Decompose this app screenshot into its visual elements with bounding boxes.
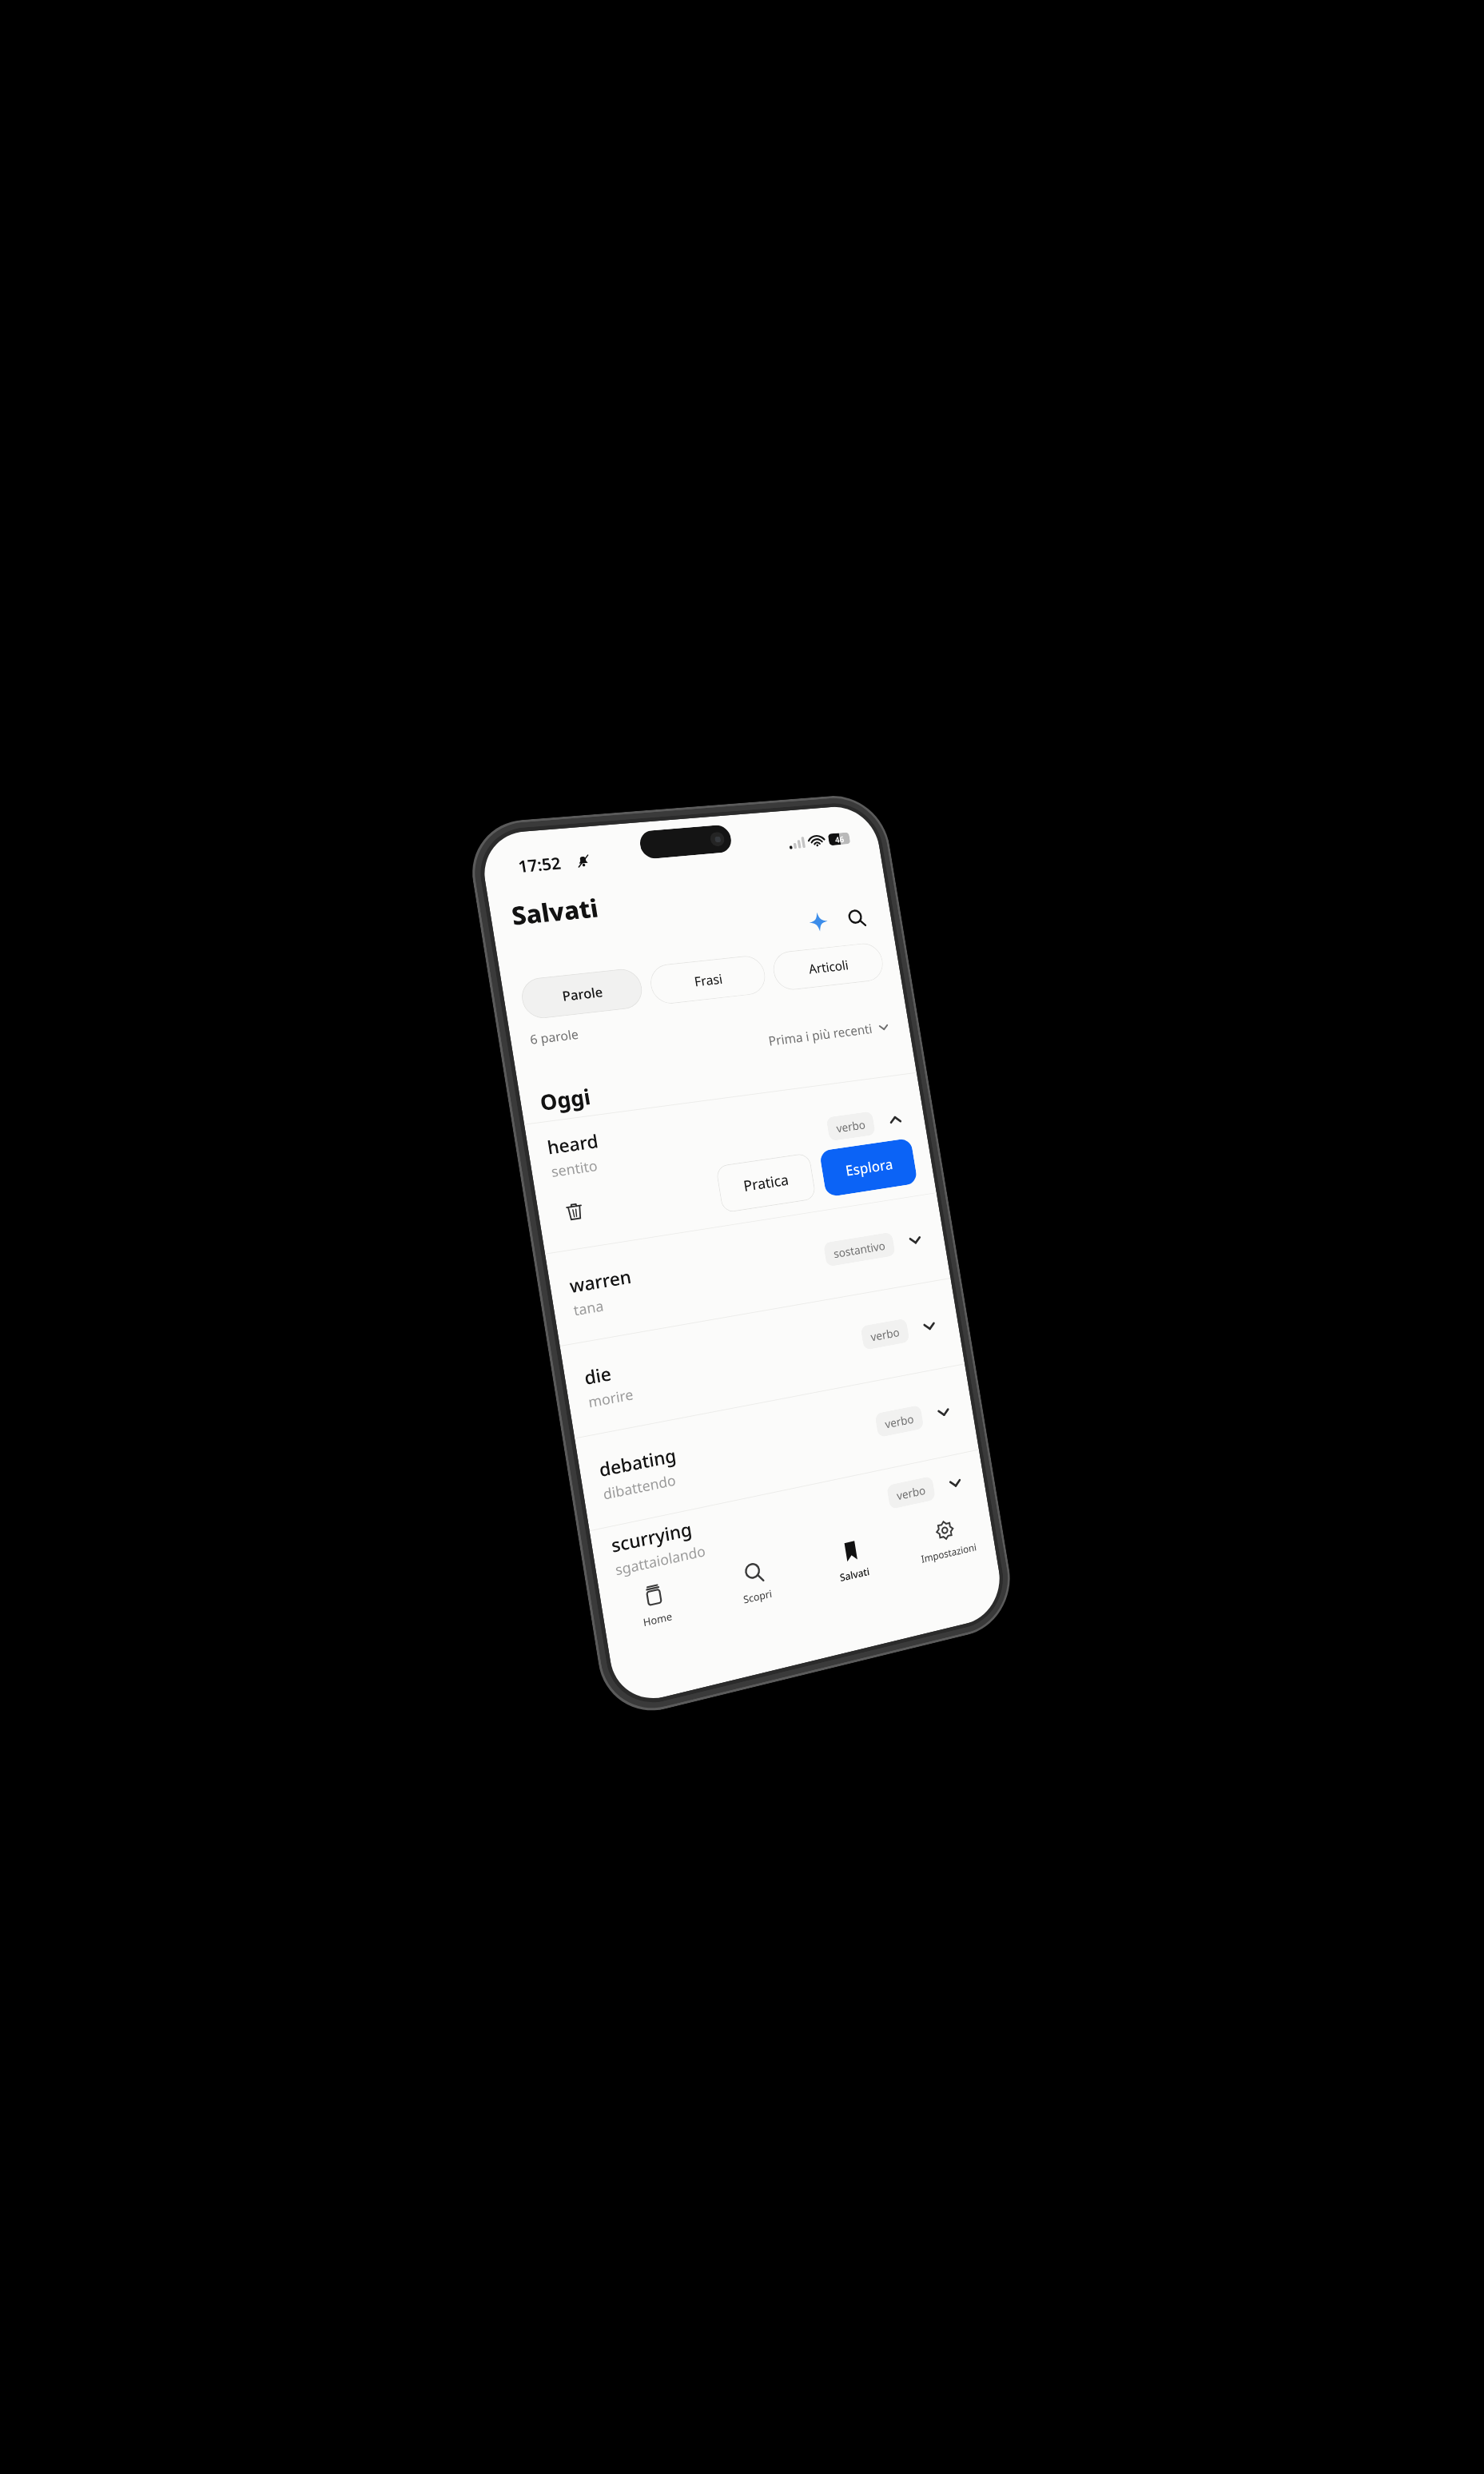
button[interactable]: Impostazioni [896,1509,1002,1614]
staticText: Impostazioni [920,1540,978,1566]
button[interactable]: AI suggerimenti [799,903,837,940]
staticText: heard [545,1128,600,1159]
staticText: morire [587,1384,635,1412]
staticText: Pratica [742,1170,791,1196]
staticText: scurrying [609,1516,694,1557]
button[interactable]: Espandi [930,1397,957,1427]
staticText: Salvati [509,891,601,933]
button[interactable]: Parole [519,967,645,1020]
button[interactable]: warren [545,1193,950,1346]
staticText: die [582,1360,613,1390]
staticText: Home [642,1609,673,1630]
button[interactable]: Pratica [715,1153,817,1213]
staticText: tana [572,1296,605,1320]
staticText: verbo [869,1324,901,1344]
staticText: sostantivo [832,1238,886,1261]
staticText: debating [597,1442,678,1482]
button[interactable]: Espandi [942,1468,969,1498]
button[interactable]: Home [600,1573,716,1684]
button[interactable]: Comprimi [882,1106,909,1134]
staticText: verbo [884,1411,915,1431]
button[interactable]: Esplora [819,1138,918,1197]
button[interactable]: Espandi [901,1226,929,1255]
button[interactable]: Espandi [916,1311,943,1341]
staticText: Articoli [807,956,850,977]
button[interactable]: Articoli [770,942,886,992]
staticText: Esplora [844,1154,894,1180]
staticText: Salvati [839,1564,871,1584]
staticText: 17:52 [517,852,563,878]
button[interactable]: scurrying [590,1450,988,1589]
button[interactable]: Prima i più recenti [764,1016,894,1051]
staticText: sgattaiolando [614,1541,707,1580]
button[interactable]: debating [575,1364,979,1530]
staticText: verbo [835,1117,867,1136]
button[interactable]: die [560,1279,965,1438]
staticText: Oggi [538,1082,593,1117]
button[interactable]: Elimina [555,1193,594,1230]
staticText: Parole [561,983,604,1005]
button[interactable]: heard [524,1073,936,1254]
staticText: Prima i più recenti [767,1020,874,1050]
staticText: dibattendo [602,1470,678,1504]
staticText: sentito [550,1156,599,1182]
button[interactable]: Cerca [838,900,875,937]
staticText: 46 [834,833,845,845]
button[interactable]: Scopri [702,1551,815,1660]
button[interactable]: Frasi [648,954,768,1006]
staticText: 6 parole [529,1025,580,1048]
staticText: warren [568,1263,633,1298]
staticText: Scopri [742,1586,773,1607]
staticText: verbo [896,1482,927,1503]
staticText: Frasi [693,970,724,990]
button[interactable]: Salvati [801,1530,910,1636]
